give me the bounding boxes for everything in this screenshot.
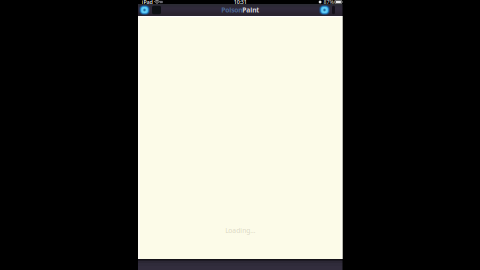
staticText: Loading…: [225, 226, 255, 235]
staticText: 10:31: [234, 0, 247, 6]
staticText: Poison: [221, 6, 242, 14]
button[interactable]: Brush: [138, 4, 150, 15]
button[interactable]: Share: [318, 4, 330, 15]
staticText: iPad: [141, 0, 152, 6]
staticText: Paint: [242, 6, 259, 14]
staticText: 87%: [323, 0, 333, 6]
